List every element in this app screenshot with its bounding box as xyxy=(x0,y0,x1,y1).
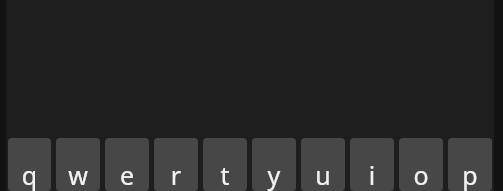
button[interactable]: u xyxy=(301,138,345,191)
staticText: u xyxy=(301,158,345,191)
staticText: r xyxy=(154,158,198,191)
button[interactable]: y xyxy=(252,138,296,191)
button[interactable]: t xyxy=(203,138,247,191)
staticText: t xyxy=(203,158,247,191)
button[interactable]: q xyxy=(8,138,51,191)
button[interactable]: e xyxy=(105,138,149,191)
staticText: w xyxy=(56,158,100,191)
staticText: o xyxy=(399,158,443,191)
button[interactable]: i xyxy=(350,138,394,191)
staticText: p xyxy=(448,158,492,191)
staticText: i xyxy=(350,158,394,191)
staticText: y xyxy=(252,158,296,191)
button[interactable]: w xyxy=(56,138,100,191)
button[interactable]: o xyxy=(399,138,443,191)
staticText: q xyxy=(8,158,51,191)
button[interactable]: p xyxy=(448,138,492,191)
staticText: e xyxy=(105,158,149,191)
button[interactable]: r xyxy=(154,138,198,191)
